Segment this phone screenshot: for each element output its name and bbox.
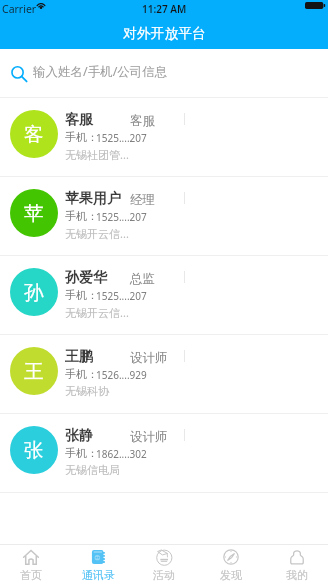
button[interactable]: 对外开放平台 [0,20,328,49]
button[interactable]: Activities [133,544,195,587]
staticText: 活动 [153,568,175,582]
button[interactable]: 苹 [0,177,328,256]
staticText: 对外开放平台 [123,25,206,42]
other: Contacts [90,549,106,565]
other: Discover [223,549,239,565]
staticText: 无锡信电局 [65,463,120,477]
staticText: 客 [24,122,44,147]
staticText: 孙爱华 [65,269,107,287]
staticText: 孙 [24,280,44,305]
button[interactable]: Home [0,544,62,587]
staticText: 输入姓名/手机/公司信息 [33,63,168,80]
staticText: 苹 [24,201,44,226]
other: Activities [156,549,172,565]
staticText: 苹果用户 [65,190,121,208]
staticText: 1525....207 [96,289,147,303]
staticText: 设计师 [130,350,168,366]
button[interactable]: Discover [200,544,262,587]
staticText: 经理 [130,192,155,208]
staticText: 手机： [65,130,98,144]
button[interactable]: Contacts [67,544,129,587]
staticText: 通讯录 [82,568,115,582]
staticText: 我的 [286,568,308,582]
staticText: 发现 [220,568,242,582]
other: Home [23,549,39,565]
staticText: 张静 [65,427,93,445]
staticText: 无锡社团管... [65,147,129,162]
staticText: 1525....207 [96,210,147,224]
staticText: 手机： [65,288,98,302]
staticText: 首页 [20,568,42,582]
staticText: 设计师 [130,429,168,445]
staticText: 客服 [130,113,155,129]
staticText: 客服 [65,111,93,129]
staticText: 张 [24,438,44,463]
other: Profile [289,549,305,565]
button[interactable]: 孙 [0,256,328,335]
button[interactable]: 客 [0,98,328,177]
button[interactable]: 输入姓名/手机/公司信息 [0,49,328,98]
staticText: 手机： [65,209,98,223]
staticText: Carrier [2,2,37,16]
button[interactable]: 王 [0,335,328,414]
staticText: 王鹏 [65,348,93,366]
staticText: 手机： [65,367,98,381]
button[interactable]: 张 [0,414,328,493]
staticText: 无锡科协 [65,384,109,398]
staticText: 1525....207 [96,131,147,145]
staticText: 王 [24,359,44,384]
staticText: 11:27 AM [142,2,187,16]
staticText: 总监 [130,271,155,287]
staticText: 无锡开云信... [65,226,129,241]
staticText: 1526....929 [96,368,147,382]
staticText: 手机： [65,446,98,460]
staticText: 无锡开云信... [65,305,129,320]
button[interactable]: Profile [266,544,328,587]
staticText: 1862....302 [96,447,147,461]
